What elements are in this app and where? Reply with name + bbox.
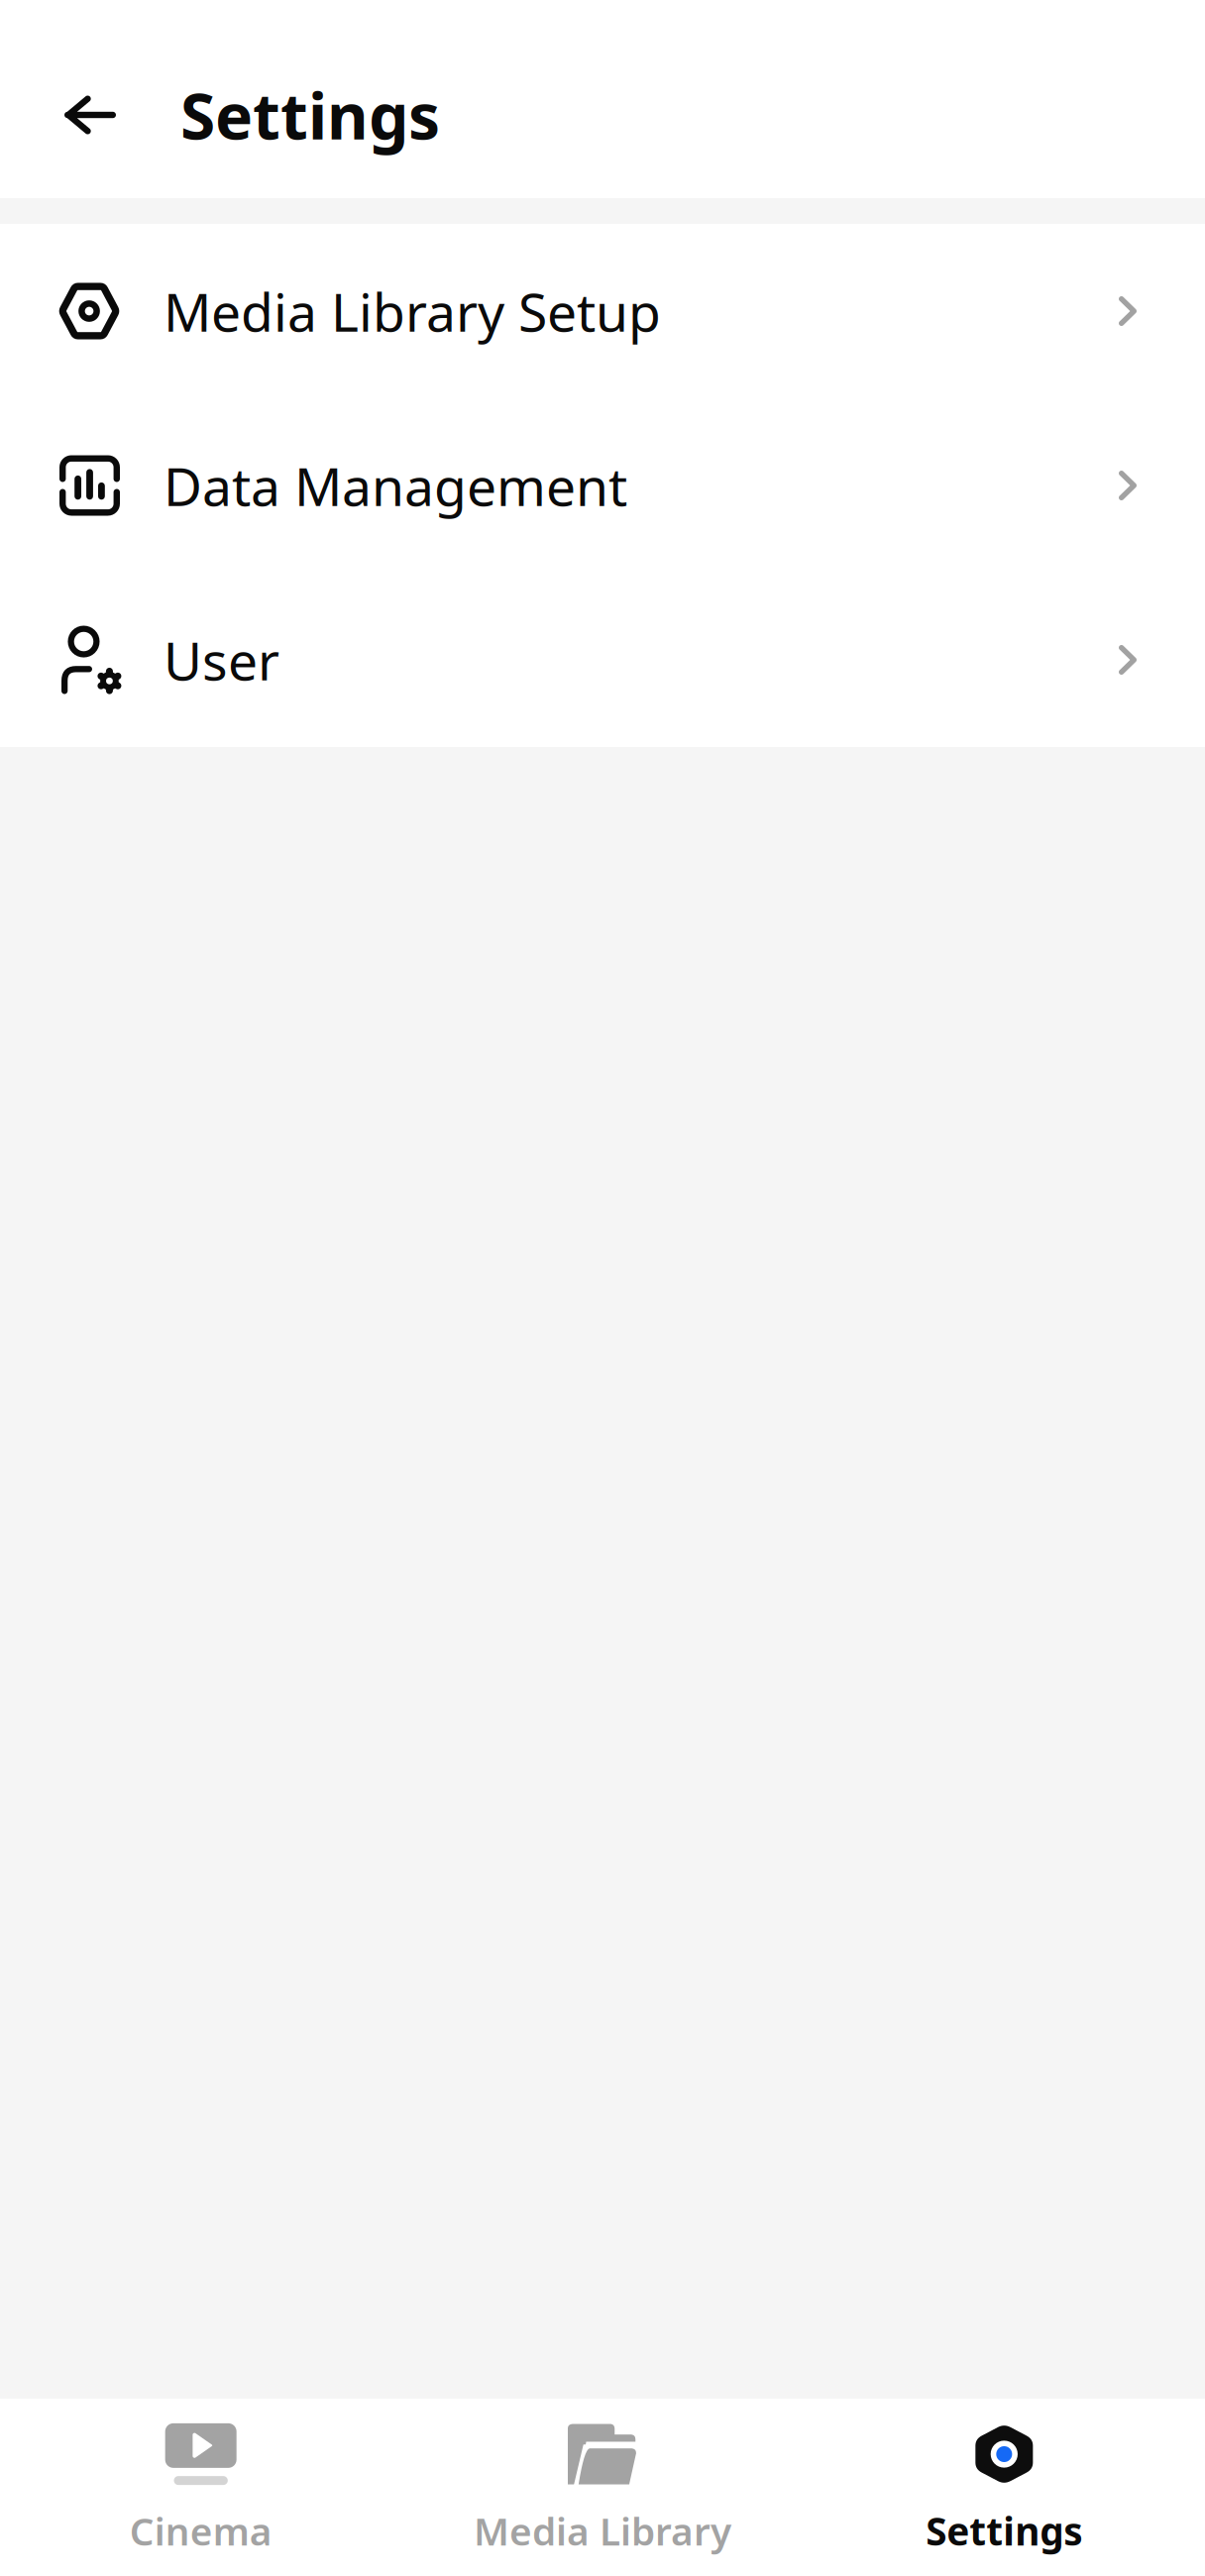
button[interactable]: Back xyxy=(39,63,142,166)
staticText: User xyxy=(164,625,279,695)
staticText: Media Library Setup xyxy=(164,276,661,346)
staticText: Settings xyxy=(926,2505,1082,2556)
button[interactable]: Media Library xyxy=(468,2399,737,2576)
button[interactable]: Settings xyxy=(869,2399,1139,2576)
button[interactable]: Data Management xyxy=(0,398,1205,573)
button[interactable]: Media Library Setup xyxy=(0,224,1205,398)
staticText: Settings xyxy=(180,73,440,157)
staticText: Cinema xyxy=(130,2505,272,2556)
button[interactable]: User xyxy=(0,573,1205,747)
button[interactable]: Cinema xyxy=(66,2399,336,2576)
staticText: Media Library xyxy=(474,2505,731,2556)
staticText: Data Management xyxy=(164,450,627,521)
